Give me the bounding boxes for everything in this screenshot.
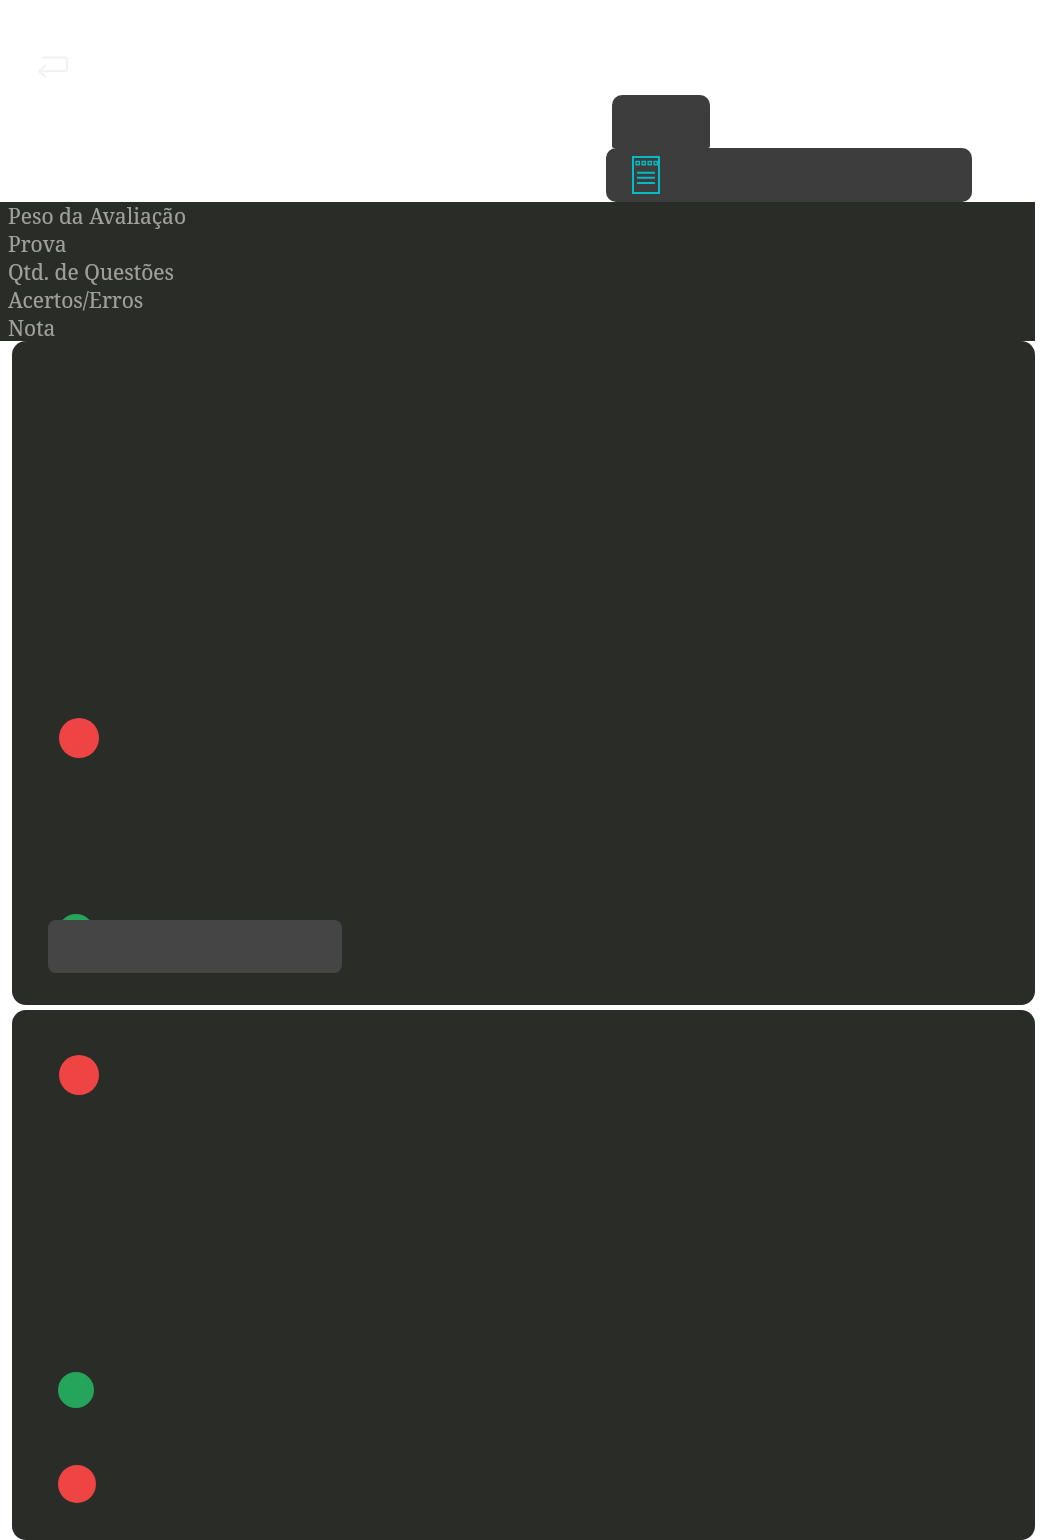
staticText: Peso da Avaliação xyxy=(8,202,186,230)
button[interactable]: Peso da Avaliação xyxy=(0,202,1035,230)
staticText: Acertos/Erros xyxy=(8,286,144,314)
button[interactable]: Back xyxy=(30,50,70,84)
button[interactable]: Nota xyxy=(0,314,1035,341)
button[interactable]: Acertos/Erros xyxy=(0,286,1035,314)
button[interactable]: Notes xyxy=(632,156,660,194)
button[interactable]: Action xyxy=(12,341,1035,1005)
button[interactable]: Qtd. de Questões xyxy=(0,258,1035,286)
staticText: Prova xyxy=(8,230,67,258)
button[interactable]: Prova xyxy=(0,230,1035,258)
staticText: Qtd. de Questões xyxy=(8,258,175,286)
button[interactable]: Tab xyxy=(612,95,710,148)
staticText: Nota xyxy=(8,314,56,341)
button[interactable] xyxy=(12,1010,1035,1540)
